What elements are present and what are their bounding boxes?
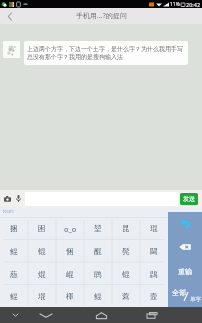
staticText: 困 — [38, 224, 46, 233]
button[interactable]: 捆 — [0, 217, 28, 240]
button[interactable]: 醌 — [84, 240, 112, 263]
staticText: 鲲 — [10, 292, 18, 301]
staticText: 焜 — [38, 270, 46, 279]
button[interactable]: 壸 — [140, 286, 168, 307]
button[interactable]: 琨 — [140, 217, 168, 240]
button[interactable]: 楎 — [56, 286, 84, 307]
staticText: 鹍 — [94, 270, 102, 279]
button[interactable]: Back — [36, 307, 56, 323]
staticText: 鲲 — [94, 292, 102, 301]
staticText: 发送 — [183, 195, 195, 203]
button[interactable]: 锟 — [28, 240, 56, 263]
button[interactable]: 髡 — [112, 240, 140, 263]
staticText: 閫 — [150, 247, 158, 256]
button[interactable]: 藛 — [112, 286, 140, 307]
button[interactable]: 昆 — [112, 217, 140, 240]
staticText: 昆 — [122, 224, 130, 233]
button[interactable]: Back — [0, 8, 20, 24]
button[interactable]: Voice input — [14, 192, 22, 205]
staticText: 11% — [170, 1, 180, 8]
staticText: 葾 — [10, 270, 18, 279]
staticText: 鵾 — [150, 270, 158, 279]
staticText: 上边两个方字，下边一个土字，是什么字？为什么我用手写总没有那个字？我用的是搜狗输… — [27, 45, 185, 61]
staticText: 重输 — [178, 267, 192, 276]
button[interactable]: Enter — [168, 212, 202, 235]
button[interactable]: 悃 — [56, 240, 84, 263]
button[interactable]: 鲲 — [0, 286, 28, 307]
staticText: 楎 — [66, 292, 74, 301]
button[interactable]: 全部 — [168, 283, 202, 307]
button[interactable]: Camera — [3, 192, 12, 205]
button[interactable]: 鵾 — [140, 263, 168, 286]
button[interactable]: 焜 — [28, 263, 56, 286]
staticText: 20:42 — [186, 1, 201, 8]
button[interactable]: 堒 — [28, 286, 56, 307]
staticText: 锟 — [38, 247, 46, 256]
button[interactable]: o_o — [56, 217, 84, 240]
button[interactable]: 锟 — [112, 263, 140, 286]
button[interactable]: 鹍 — [84, 263, 112, 286]
staticText: 锟 — [122, 270, 130, 279]
staticText: o_o — [64, 224, 77, 234]
staticText: 堃 — [94, 224, 102, 233]
staticText: 琨 — [150, 224, 158, 233]
button[interactable]: 崐 — [56, 263, 84, 286]
button[interactable]: 鲲 — [0, 240, 28, 263]
button[interactable]: Recent apps — [142, 307, 162, 323]
staticText: 藛 — [122, 292, 130, 301]
staticText: 手机用...?的提问 — [76, 11, 127, 21]
button[interactable]: 葾 — [0, 263, 28, 286]
staticText: kun — [3, 207, 14, 215]
staticText: 崐 — [66, 270, 74, 279]
button[interactable]: 困 — [28, 217, 56, 240]
staticText: 髡 — [122, 247, 130, 256]
button[interactable]: 发送 — [180, 193, 198, 205]
button[interactable]: 重输 — [168, 259, 202, 283]
staticText: 堒 — [38, 292, 46, 301]
staticText: 捆 — [10, 224, 18, 233]
staticText: 单字 — [190, 296, 201, 303]
button[interactable]: 鲲 — [84, 286, 112, 307]
staticText: 鲲 — [10, 247, 18, 256]
staticText: 全部 — [172, 288, 186, 297]
button[interactable]: 堃 — [84, 217, 112, 240]
staticText: 悃 — [66, 247, 74, 256]
button[interactable]: Hide keyboard — [7, 307, 23, 323]
button[interactable]: Backspace — [168, 235, 202, 259]
button[interactable]: Home — [91, 307, 111, 323]
staticText: 醌 — [94, 247, 102, 256]
button[interactable]: 閫 — [140, 240, 168, 263]
staticText: 壸 — [150, 292, 158, 301]
